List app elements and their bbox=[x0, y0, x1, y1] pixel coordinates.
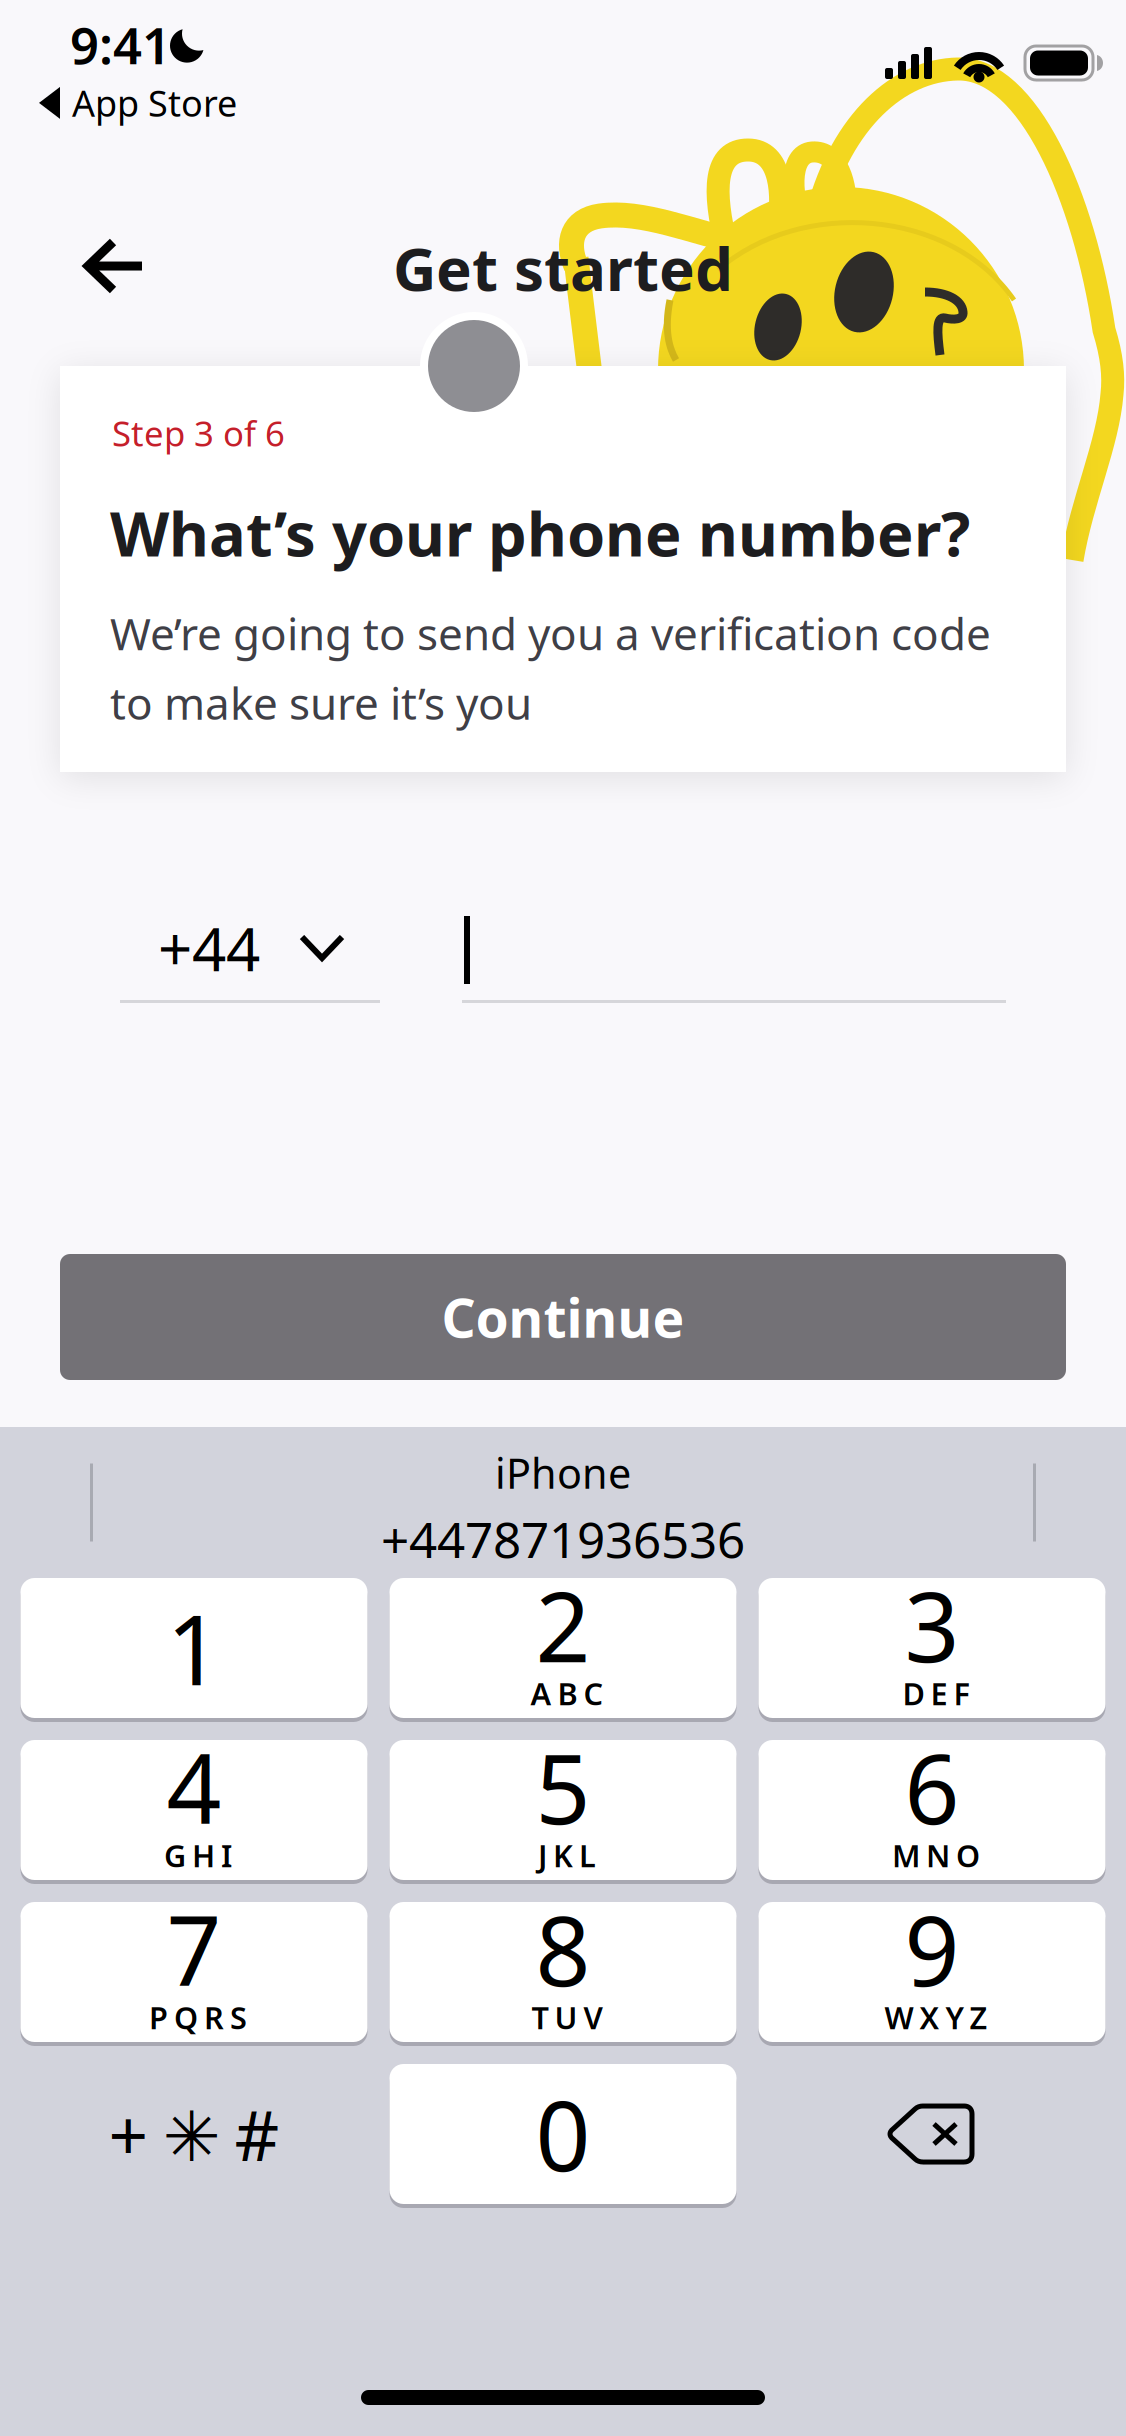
staticText: GHI bbox=[164, 1835, 232, 1876]
button[interactable]: Plus, asterisk, hash bbox=[20, 2064, 367, 2204]
staticText: 8 bbox=[535, 1885, 590, 2013]
button[interactable]: Back bbox=[54, 212, 175, 320]
staticText: 0 bbox=[535, 2070, 590, 2198]
staticText: MNO bbox=[892, 1835, 980, 1876]
button[interactable]: 6 bbox=[758, 1740, 1105, 1880]
staticText: 5 bbox=[535, 1723, 590, 1851]
button[interactable]: +44 bbox=[120, 898, 380, 998]
staticText: 6 bbox=[904, 1723, 959, 1851]
staticText: What’s your phone number? bbox=[110, 492, 970, 573]
button[interactable]: 5 bbox=[389, 1740, 736, 1880]
staticText: PQRS bbox=[149, 1997, 247, 2038]
staticText: Get started bbox=[393, 228, 733, 308]
button[interactable]: 0 bbox=[389, 2064, 736, 2204]
staticText: +✳# bbox=[108, 2088, 279, 2180]
staticText: iPhone bbox=[495, 1445, 631, 1500]
staticText: App Store bbox=[72, 79, 237, 127]
staticText: WXYZ bbox=[884, 1997, 987, 2038]
button[interactable]: 4 bbox=[20, 1740, 367, 1880]
staticText: 7 bbox=[166, 1885, 221, 2013]
staticText: We’re going to send you a verification c… bbox=[110, 604, 991, 662]
button[interactable]: App Store bbox=[30, 71, 245, 135]
staticText: to make sure it’s you bbox=[110, 673, 532, 732]
staticText: 3 bbox=[904, 1561, 959, 1689]
staticText: ABC bbox=[530, 1673, 603, 1714]
staticText: DEF bbox=[902, 1673, 969, 1714]
button[interactable]: 1 bbox=[20, 1578, 367, 1718]
staticText: 4 bbox=[166, 1723, 221, 1851]
button[interactable]: 7 bbox=[20, 1902, 367, 2042]
button[interactable]: 9 bbox=[758, 1902, 1105, 2042]
button[interactable]: 3 bbox=[758, 1578, 1105, 1718]
staticText: 9:41 bbox=[70, 11, 171, 78]
button[interactable]: 2 bbox=[389, 1578, 736, 1718]
button[interactable]: Delete bbox=[758, 2064, 1105, 2204]
staticText: 1 bbox=[166, 1584, 221, 1712]
staticText: +44 bbox=[158, 908, 260, 988]
staticText: TUV bbox=[531, 1997, 602, 2038]
staticText: +447871936536 bbox=[381, 1506, 745, 1572]
button[interactable]: Continue bbox=[60, 1254, 1066, 1380]
staticText: 9 bbox=[904, 1885, 959, 2013]
staticText: Step 3 of 6 bbox=[112, 410, 285, 456]
button[interactable]: 8 bbox=[389, 1902, 736, 2042]
staticText: 2 bbox=[535, 1561, 590, 1689]
staticText: JKL bbox=[538, 1835, 596, 1876]
staticText: Continue bbox=[441, 1282, 684, 1352]
